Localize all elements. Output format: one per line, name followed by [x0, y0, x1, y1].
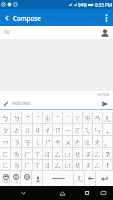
staticText: ㄓ [44, 114, 52, 123]
button[interactable]: ㄊ [11, 124, 22, 136]
button[interactable]: ˋ [33, 112, 43, 124]
button[interactable]: ㄚ [73, 112, 83, 124]
button[interactable]: Keyboard option [32, 171, 43, 186]
button[interactable]: Send message [99, 98, 111, 109]
button[interactable]: ㄢ [93, 112, 103, 124]
staticText: ㄖ [44, 161, 52, 170]
button[interactable]: More options [100, 9, 113, 26]
button[interactable]: ㄌ [11, 160, 22, 171]
button[interactable]: ！ [103, 160, 113, 171]
button[interactable]: ㄌ [11, 148, 22, 160]
staticText: ㄈ [2, 150, 10, 159]
staticText: ㄝ [74, 161, 82, 170]
staticText: ㄞ [84, 114, 92, 123]
staticText: ㄐ [34, 126, 42, 135]
button[interactable]: ㄒ [33, 148, 43, 160]
staticText: ㄅ [2, 114, 10, 123]
staticText: ㄜ [74, 138, 82, 147]
button[interactable]: ㄞ [83, 112, 93, 124]
button[interactable]: ㄥ [93, 148, 103, 160]
button[interactable]: ㄏ [22, 148, 33, 160]
button[interactable]: ㄎ [22, 136, 33, 148]
button[interactable]: ㄅ [0, 112, 11, 124]
staticText: ㄘ [54, 138, 62, 147]
button[interactable]: Enter [96, 171, 113, 186]
button[interactable]: ㄐ [33, 124, 43, 136]
button[interactable]: Navigate up [0, 9, 13, 26]
button[interactable]: ㄠ [83, 136, 93, 148]
button[interactable]: , [21, 171, 32, 186]
button[interactable]: ㄕ [43, 136, 53, 148]
button[interactable]: Hide keyboard [0, 186, 46, 200]
staticText: ㄆ [2, 126, 10, 135]
button[interactable]: ㄙ [53, 160, 63, 171]
button[interactable]: ㄗ [53, 124, 63, 136]
staticText: ！ [104, 161, 112, 170]
button[interactable]: ㄋ [11, 136, 22, 148]
button[interactable]: Switch keyboard [95, 186, 111, 200]
button[interactable]: ㄡ [83, 148, 93, 160]
button[interactable]: ㄓ [43, 112, 53, 124]
staticText: ㄡ [84, 150, 92, 159]
button[interactable]: ？ [103, 148, 113, 160]
staticText: ㄧ [64, 126, 72, 135]
staticText: Add text [12, 100, 31, 107]
staticText: ㄝ [74, 150, 82, 159]
button[interactable]: ㄩ [63, 148, 73, 160]
button[interactable]: ˙ [63, 112, 73, 124]
button[interactable]: ㄈ [0, 160, 11, 171]
staticText: ㄏ [24, 150, 32, 159]
button[interactable]: ˇ [22, 112, 33, 124]
staticText: ㄒ [34, 150, 42, 159]
staticText: ㄊ [13, 126, 21, 135]
staticText: ㄩ [64, 161, 72, 170]
button[interactable]: ㄏ [22, 160, 33, 171]
button[interactable]: ㄡ [83, 160, 93, 171]
button[interactable]: ㄆ [0, 124, 11, 136]
staticText: ㄠ [84, 138, 92, 147]
button[interactable]: ㄤ [93, 136, 103, 148]
button[interactable]: ㄜ [73, 136, 83, 148]
button[interactable]: ㄈ [0, 148, 11, 160]
button[interactable]: ㄣ [93, 124, 103, 136]
button[interactable]: 。 [103, 136, 113, 148]
button[interactable]: ㄇ [0, 136, 11, 148]
staticText: ㄟ [84, 126, 92, 135]
button[interactable]: ㄛ [73, 124, 83, 136]
button[interactable]: ㄩ [63, 160, 73, 171]
staticText: ㄇ [2, 138, 10, 147]
button[interactable]: Home [46, 186, 78, 200]
button[interactable]: ㄖ [43, 160, 53, 171]
staticText: ㄈ [2, 161, 10, 170]
button[interactable]: ㄖ [43, 148, 53, 160]
staticText: ㄙ [54, 150, 62, 159]
button[interactable]: ㄟ [83, 124, 93, 136]
staticText: 9:33 PM [95, 2, 112, 8]
button[interactable]: ， [103, 124, 113, 136]
button[interactable]: ㄦ [103, 112, 113, 124]
staticText: ㄎ [24, 138, 32, 147]
button[interactable]: ㄨ [63, 136, 73, 148]
button[interactable]: ㄔ [43, 124, 53, 136]
button[interactable]: ㄙ [53, 148, 63, 160]
button[interactable]: Add contact [98, 26, 111, 39]
button[interactable]: ?123 [0, 171, 10, 186]
button[interactable]: ㄉ [11, 112, 22, 124]
staticText: ？ [104, 150, 112, 159]
button[interactable]: ㄝ [73, 148, 83, 160]
button[interactable]: ㄥ [93, 160, 103, 171]
staticText: ˊ [57, 113, 60, 123]
button[interactable]: ㄧ [63, 124, 73, 136]
button[interactable]: ㄍ [22, 124, 33, 136]
button[interactable]: Backspace [85, 171, 96, 186]
button[interactable]: ㄑ [33, 136, 43, 148]
button[interactable]: ㄝ [73, 160, 83, 171]
button[interactable]: ˊ [53, 112, 63, 124]
button[interactable]: ㄒ [33, 160, 43, 171]
button[interactable]: Recent apps [78, 186, 95, 200]
button[interactable]: Space [43, 171, 74, 186]
staticText: ˇ [26, 113, 30, 123]
button[interactable]: ㄦ [74, 171, 85, 186]
button[interactable]: 中 [10, 171, 21, 186]
button[interactable]: ㄘ [53, 136, 63, 148]
